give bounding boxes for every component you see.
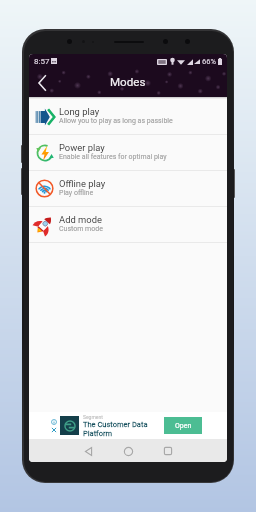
button[interactable]: Recents [159, 442, 177, 460]
button[interactable]: Power play [29, 135, 227, 170]
staticText: Offline play [59, 178, 106, 189]
staticText: Modes [110, 75, 146, 89]
staticText: Custom mode [59, 225, 103, 233]
staticText: Play offline [59, 189, 94, 197]
staticText: Open [175, 422, 192, 430]
staticText: Platform [83, 429, 113, 438]
button[interactable]: Open [164, 417, 202, 434]
staticText: Add mode [59, 214, 102, 225]
staticText: 66% [202, 57, 216, 66]
button[interactable]: Back [79, 442, 97, 460]
staticText: Long play [59, 106, 100, 117]
button[interactable]: Back [31, 72, 53, 94]
staticText: Segment [83, 414, 103, 420]
staticText: Allow you to play as long as passible [59, 117, 173, 125]
button[interactable]: Offline play [29, 171, 227, 206]
button[interactable]: Add mode [29, 207, 227, 242]
staticText: The Customer Data [83, 420, 148, 429]
staticText: Enable all features for optimal play [59, 153, 167, 161]
button[interactable]: Home [119, 442, 137, 460]
staticText: Power play [59, 142, 105, 153]
button[interactable]: Long play [29, 99, 227, 134]
staticText: 8:57 [34, 57, 50, 66]
